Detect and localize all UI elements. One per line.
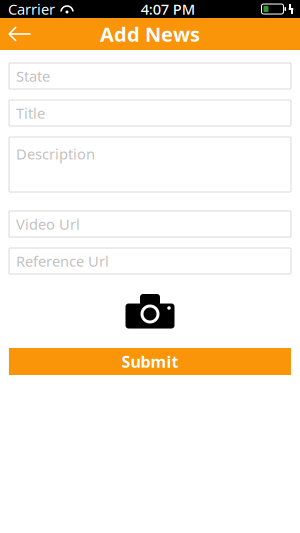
button[interactable]: Video Url xyxy=(9,211,291,237)
staticText: Video Url xyxy=(16,214,80,234)
staticText: Carrier xyxy=(8,0,55,19)
button[interactable]: Title xyxy=(9,100,291,126)
staticText: State xyxy=(16,66,50,86)
staticText: Add News xyxy=(100,21,200,47)
staticText: Description xyxy=(16,144,95,163)
staticText: Submit xyxy=(121,351,178,372)
staticText: 4:07 PM xyxy=(141,0,195,19)
button[interactable]: Description xyxy=(9,137,291,192)
staticText: Reference Url xyxy=(16,251,109,271)
button[interactable]: Take photo xyxy=(115,291,185,335)
button[interactable]: Submit xyxy=(9,348,291,375)
button[interactable]: Reference Url xyxy=(9,248,291,274)
button[interactable]: State xyxy=(9,63,291,89)
button[interactable]: Back xyxy=(0,18,40,50)
staticText: Title xyxy=(16,103,45,123)
